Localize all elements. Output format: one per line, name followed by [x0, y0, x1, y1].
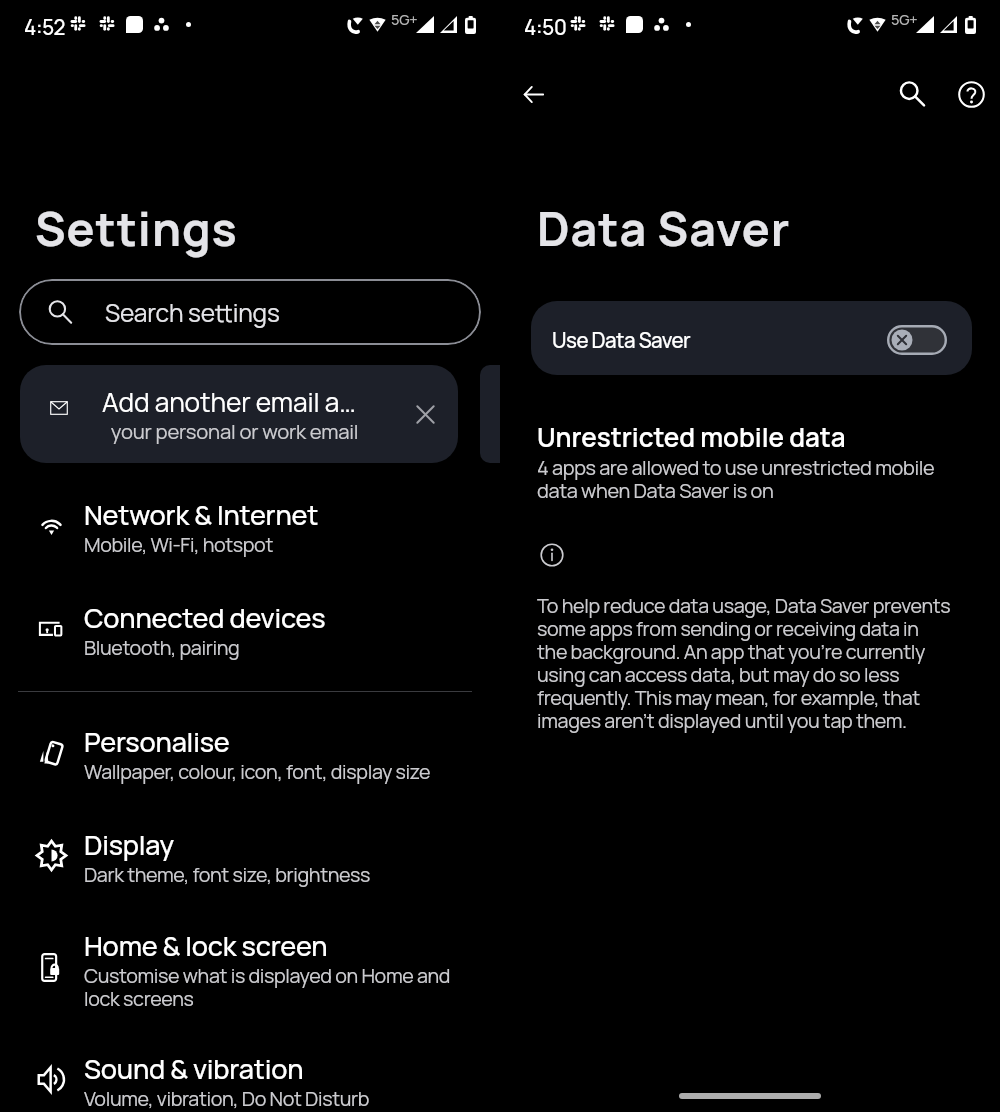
staticText: Search settings: [105, 296, 280, 329]
staticText: Add another email a…: [102, 384, 356, 420]
staticText: Unrestricted mobile data: [537, 419, 846, 455]
staticText: 4:50: [524, 13, 567, 41]
staticText: Customise what is displayed on Home and …: [84, 962, 476, 1012]
staticText: Personalise: [84, 723, 230, 760]
button[interactable]: Connected devices: [0, 578, 500, 664]
staticText: 5G+: [891, 10, 918, 30]
staticText: Home & lock screen: [84, 927, 328, 964]
staticText: To help reduce data usage, Data Saver pr…: [537, 592, 951, 734]
button[interactable]: Search: [887, 69, 937, 119]
staticText: Data Saver: [537, 196, 791, 260]
staticText: 4 apps are allowed to use unrestricted m…: [537, 454, 949, 504]
button[interactable]: Display: [0, 805, 500, 891]
staticText: Display: [84, 826, 174, 863]
button[interactable]: Personalise: [0, 702, 500, 788]
staticText: Sound & vibration: [84, 1050, 304, 1087]
staticText: Connected devices: [84, 599, 326, 636]
button[interactable]: Dismiss: [403, 392, 447, 436]
staticText: 4:52: [24, 13, 66, 41]
staticText: Volume, vibration, Do Not Disturb: [84, 1085, 476, 1112]
button[interactable]: Network & Internet: [0, 475, 500, 561]
button[interactable]: Search settings: [19, 279, 481, 345]
staticText: Bluetooth, pairing: [84, 634, 476, 661]
staticText: Dark theme, font size, brightness: [84, 861, 476, 888]
staticText: Network & Internet: [84, 496, 319, 533]
staticText: Settings: [35, 196, 238, 260]
staticText: Mobile, Wi-Fi, hotspot: [84, 531, 476, 558]
button[interactable]: Use Data Saver: [531, 301, 972, 375]
button[interactable]: Home & lock screen: [0, 906, 500, 1016]
staticText: your personal or work email: [107, 417, 359, 445]
staticText: Use Data Saver: [552, 326, 691, 354]
button[interactable]: Help: [946, 69, 996, 119]
button[interactable]: Sound & vibration: [0, 1029, 500, 1112]
staticText: 5G+: [391, 10, 418, 30]
staticText: Wallpaper, colour, icon, font, display s…: [84, 758, 476, 785]
button[interactable]: Back: [508, 69, 558, 119]
button[interactable]: Add another email a…: [20, 365, 458, 463]
